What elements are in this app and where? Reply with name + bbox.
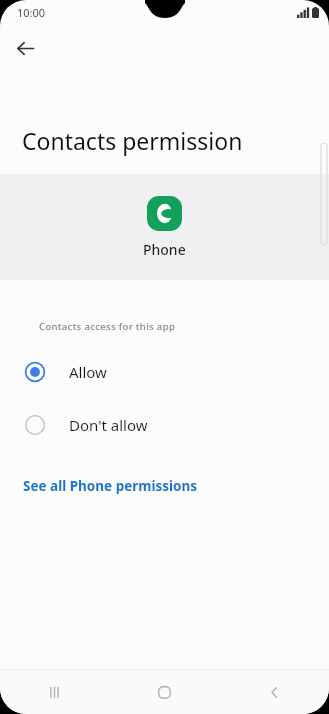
button[interactable]: See all Phone permissions [0, 473, 329, 503]
button[interactable]: Home [109, 670, 219, 714]
staticText: 10:00 [17, 5, 46, 20]
staticText: See all Phone permissions [23, 477, 198, 495]
staticText: Phone [143, 240, 186, 259]
staticText: Contacts access for this app [39, 320, 176, 333]
staticText: Allow [69, 362, 107, 382]
button[interactable]: Recents [0, 670, 109, 714]
staticText: Don't allow [69, 415, 148, 435]
button[interactable]: Allow [0, 345, 329, 398]
button[interactable]: Back [9, 32, 42, 65]
staticText: Contacts permission [22, 125, 243, 156]
button[interactable]: Back [219, 670, 329, 714]
button[interactable]: Don't allow [0, 398, 329, 451]
